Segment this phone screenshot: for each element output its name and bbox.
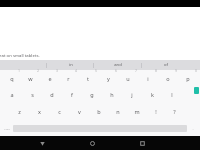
button[interactable]: e: [40, 70, 59, 86]
staticText: 0: [195, 69, 197, 73]
staticText: d: [50, 91, 54, 98]
button[interactable]: z: [9, 103, 29, 120]
staticText: p: [186, 75, 190, 82]
staticText: 9: [175, 69, 177, 73]
button[interactable]: s: [22, 86, 42, 103]
staticText: 1: [18, 69, 20, 73]
button[interactable]: o: [158, 70, 178, 86]
staticText: c: [58, 108, 61, 115]
button[interactable]: t: [78, 70, 98, 86]
button[interactable]: k: [142, 86, 162, 103]
staticText: k: [151, 91, 154, 98]
staticText: 5: [95, 69, 97, 73]
button[interactable]: and: [94, 60, 142, 70]
button[interactable]: Home: [86, 138, 98, 149]
button[interactable]: of: [142, 60, 190, 70]
staticText: s: [31, 91, 34, 98]
staticText: .: [192, 126, 194, 131]
button[interactable]: n: [108, 103, 127, 120]
staticText: a: [10, 91, 14, 98]
staticText: 8: [155, 69, 157, 73]
staticText: in: [69, 62, 73, 68]
button[interactable]: Recent apps: [136, 138, 148, 149]
staticText: x: [38, 108, 41, 115]
button[interactable]: Enter: [194, 87, 199, 94]
button[interactable]: f: [62, 86, 82, 103]
staticText: 4: [75, 69, 77, 73]
staticText: n: [116, 108, 120, 115]
staticText: of: [164, 62, 168, 68]
staticText: g: [90, 91, 94, 98]
staticText: i: [147, 75, 149, 82]
staticText: reat on small tablets.: [0, 52, 40, 58]
button[interactable]: b: [89, 103, 108, 120]
staticText: and: [114, 62, 122, 68]
button[interactable]: u: [118, 70, 138, 86]
staticText: !: [155, 108, 157, 115]
button[interactable]: y: [98, 70, 118, 86]
staticText: u: [126, 75, 130, 82]
staticText: 6: [115, 69, 117, 73]
button[interactable]: g: [82, 86, 102, 103]
staticText: o: [166, 75, 170, 82]
button[interactable]: i: [138, 70, 158, 86]
staticText: r: [67, 75, 70, 82]
button[interactable]: a: [2, 86, 22, 103]
staticText: w: [28, 75, 33, 82]
staticText: ?: [173, 108, 176, 115]
staticText: b: [97, 108, 101, 115]
staticText: y: [107, 75, 110, 82]
staticText: 2: [37, 69, 39, 73]
staticText: m: [134, 108, 140, 115]
staticText: q: [10, 75, 14, 82]
staticText: v: [78, 108, 81, 115]
button[interactable]: l: [162, 86, 182, 103]
staticText: e: [48, 75, 52, 82]
button[interactable]: ?: [165, 103, 184, 120]
staticText: t: [87, 75, 89, 82]
button[interactable]: p: [178, 70, 198, 86]
staticText: 3: [56, 69, 58, 73]
staticText: 7: [135, 69, 137, 73]
button[interactable]: Symbols: [2, 120, 12, 136]
button[interactable]: m: [127, 103, 146, 120]
button[interactable]: c: [49, 103, 69, 120]
button[interactable]: !: [146, 103, 165, 120]
button[interactable]: x: [29, 103, 49, 120]
button[interactable]: d: [42, 86, 62, 103]
button[interactable]: Back: [36, 138, 48, 149]
staticText: j: [131, 91, 133, 98]
button[interactable]: q: [2, 70, 21, 86]
staticText: l: [171, 91, 173, 98]
staticText: f: [71, 91, 73, 98]
staticText: z: [18, 108, 21, 115]
button[interactable]: j: [122, 86, 142, 103]
staticText: ?123: [4, 127, 10, 130]
button[interactable]: h: [102, 86, 122, 103]
button[interactable]: r: [59, 70, 78, 86]
button[interactable]: in: [47, 60, 94, 70]
staticText: h: [110, 91, 114, 98]
button[interactable]: v: [69, 103, 89, 120]
button[interactable]: w: [21, 70, 40, 86]
